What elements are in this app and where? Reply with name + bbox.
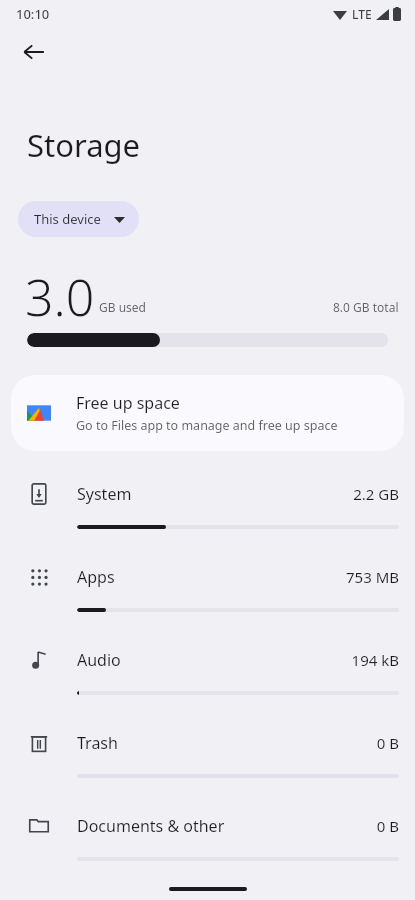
staticText: GB used xyxy=(99,299,146,315)
button[interactable]: System xyxy=(0,463,415,546)
button[interactable]: Trash xyxy=(0,712,415,795)
button[interactable]: This device xyxy=(18,201,139,237)
staticText: Go to Files app to manage and free up sp… xyxy=(76,417,338,434)
staticText: Documents & other xyxy=(77,815,376,837)
button[interactable]: Apps xyxy=(0,546,415,629)
staticText: 0 B xyxy=(376,816,399,836)
staticText: System xyxy=(77,483,353,505)
staticText: Trash xyxy=(77,732,376,754)
button[interactable]: Documents & other xyxy=(0,795,415,878)
staticText: 2.2 GB xyxy=(353,484,399,504)
staticText: 194 kB xyxy=(351,650,399,670)
staticText: Apps xyxy=(77,566,346,588)
button[interactable]: Back xyxy=(10,28,58,76)
staticText: 3.0 xyxy=(25,263,95,321)
staticText: Free up space xyxy=(76,392,180,414)
staticText: Audio xyxy=(77,649,351,671)
staticText: 10:10 xyxy=(16,5,50,23)
button[interactable]: Free up space xyxy=(11,375,404,451)
staticText: 8.0 GB total xyxy=(333,299,399,315)
staticText: LTE xyxy=(352,6,372,22)
button[interactable]: Audio xyxy=(0,629,415,712)
staticText: 753 MB xyxy=(346,567,399,587)
staticText: Storage xyxy=(27,124,141,166)
staticText: This device xyxy=(34,210,101,228)
staticText: 0 B xyxy=(376,733,399,753)
